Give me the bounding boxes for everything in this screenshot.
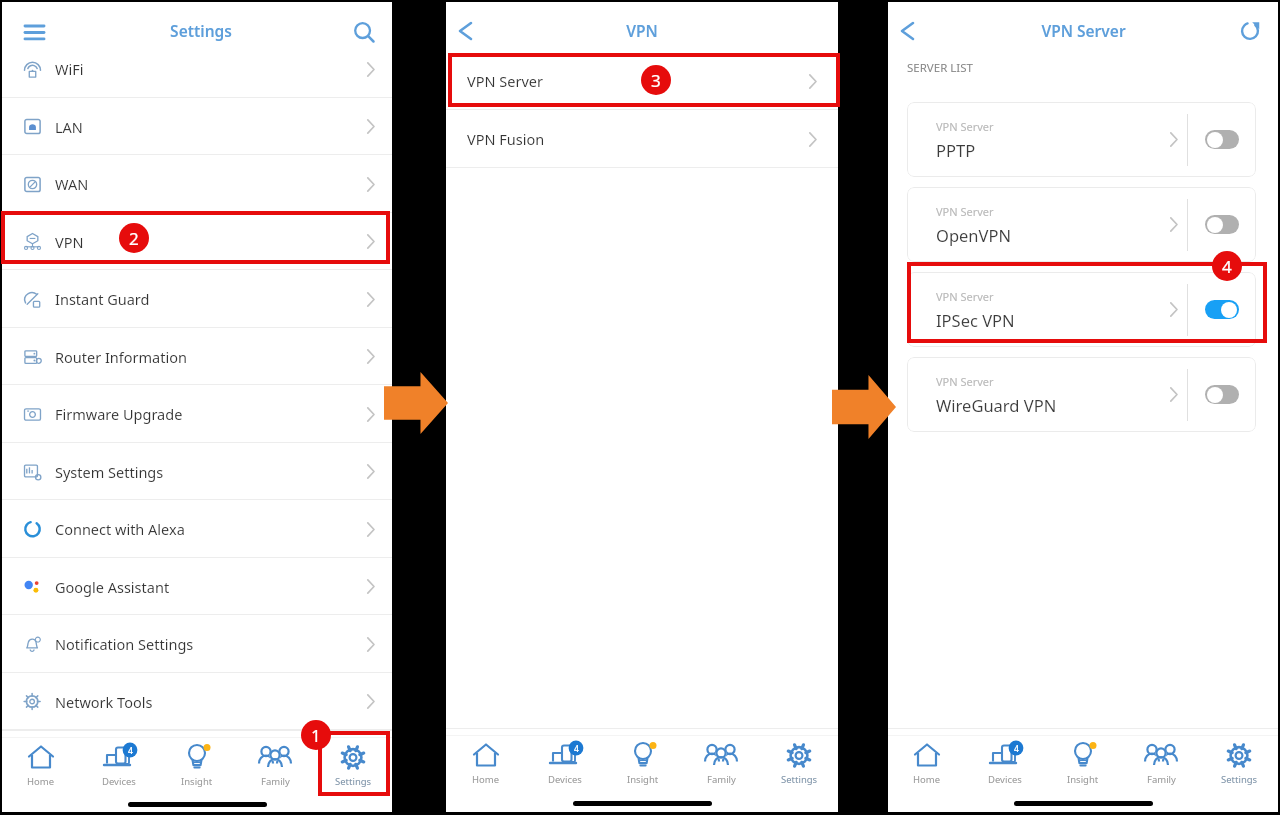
staticText: PPTP [936, 139, 976, 161]
button[interactable]: Back [446, 10, 484, 51]
button[interactable]: Home [2, 738, 80, 789]
staticText: Family [707, 773, 736, 786]
button[interactable]: WAN [2, 155, 392, 213]
staticText: OpenVPN [936, 224, 1011, 246]
button[interactable]: Google Assistant [2, 558, 392, 615]
staticText: Connect with Alexa [55, 519, 185, 539]
staticText: Notification Settings [55, 634, 194, 654]
button[interactable]: Toggle PPTP [1205, 130, 1239, 149]
staticText: VPN [55, 232, 84, 252]
button[interactable]: Home [888, 736, 966, 787]
staticText: VPN [626, 20, 658, 41]
button[interactable]: Insight [604, 736, 682, 787]
staticText: Home [27, 775, 55, 788]
staticText: 4 [128, 745, 133, 757]
button[interactable]: Refresh [1222, 10, 1278, 51]
button[interactable]: Family [1122, 736, 1200, 787]
staticText: 4 [574, 743, 579, 755]
staticText: Settings [335, 775, 372, 788]
staticText: WiFi [55, 59, 84, 79]
staticText: Devices [102, 775, 136, 788]
staticText: 1 [311, 724, 321, 747]
button[interactable]: LAN [2, 98, 392, 155]
button[interactable]: VPN Server [907, 272, 1256, 347]
button[interactable]: Instant Guard [2, 270, 392, 328]
staticText: Family [1147, 773, 1176, 786]
staticText: VPN Server [1041, 20, 1126, 41]
staticText: 2 [129, 227, 139, 250]
button[interactable]: VPN Server [907, 102, 1256, 177]
staticText: IPSec VPN [936, 309, 1015, 331]
staticText: SERVER LIST [907, 60, 973, 76]
button[interactable]: Notification Settings [2, 615, 392, 673]
button[interactable]: WiFi [2, 40, 392, 98]
staticText: Google Assistant [55, 577, 170, 597]
button[interactable]: Router Information [2, 328, 392, 385]
button[interactable]: Settings [314, 738, 392, 789]
button[interactable]: Search [336, 12, 392, 49]
staticText: Network Tools [55, 692, 153, 712]
staticText: Home [472, 773, 500, 786]
button[interactable]: Menu [2, 12, 66, 49]
button[interactable]: Toggle WireGuard VPN [1205, 385, 1239, 404]
staticText: Family [261, 775, 290, 788]
staticText: WAN [55, 174, 89, 194]
staticText: Router Information [55, 347, 187, 367]
staticText: Insight [1067, 773, 1099, 786]
staticText: VPN Server [467, 71, 543, 91]
staticText: VPN Server [936, 289, 994, 304]
button[interactable]: 4 [80, 738, 158, 789]
button[interactable]: Firmware Upgrade [2, 385, 392, 443]
button[interactable]: Settings [760, 736, 838, 787]
staticText: 4 [1014, 743, 1019, 755]
staticText: Insight [627, 773, 659, 786]
staticText: 4 [1222, 255, 1232, 278]
staticText: VPN Server [936, 204, 994, 219]
button[interactable]: Insight [158, 738, 236, 789]
button[interactable]: Connect with Alexa [2, 500, 392, 558]
staticText: System Settings [55, 462, 164, 482]
staticText: Firmware Upgrade [55, 404, 183, 424]
button[interactable]: Settings [1200, 736, 1278, 787]
staticText: LAN [55, 117, 83, 137]
button[interactable]: VPN Server [907, 357, 1256, 432]
button[interactable]: 4 [525, 736, 604, 787]
button[interactable]: VPN [2, 213, 392, 270]
button[interactable]: Family [236, 738, 314, 789]
staticText: Home [913, 773, 941, 786]
staticText: VPN Server [936, 374, 994, 389]
staticText: WireGuard VPN [936, 394, 1057, 416]
button[interactable]: Back [888, 10, 926, 51]
button[interactable]: VPN Server [907, 187, 1256, 262]
button[interactable]: VPN Fusion [446, 110, 838, 168]
button[interactable]: Family [682, 736, 760, 787]
staticText: Devices [988, 773, 1022, 786]
staticText: VPN Fusion [467, 129, 545, 149]
button[interactable]: Network Tools [2, 673, 392, 730]
staticText: VPN Server [936, 119, 994, 134]
button[interactable]: 4 [966, 736, 1044, 787]
button[interactable]: Insight [1044, 736, 1122, 787]
staticText: Settings [66, 20, 336, 41]
button[interactable]: System Settings [2, 443, 392, 500]
staticText: 3 [651, 69, 661, 92]
button[interactable]: VPN Server [446, 52, 838, 110]
button[interactable]: Home [446, 736, 525, 787]
button[interactable]: Toggle OpenVPN [1205, 215, 1239, 234]
button[interactable]: Toggle IPSec VPN [1205, 300, 1239, 319]
staticText: Devices [548, 773, 582, 786]
staticText: Settings [1221, 773, 1258, 786]
staticText: Insight [181, 775, 213, 788]
staticText: Settings [781, 773, 818, 786]
staticText: Instant Guard [55, 289, 150, 309]
